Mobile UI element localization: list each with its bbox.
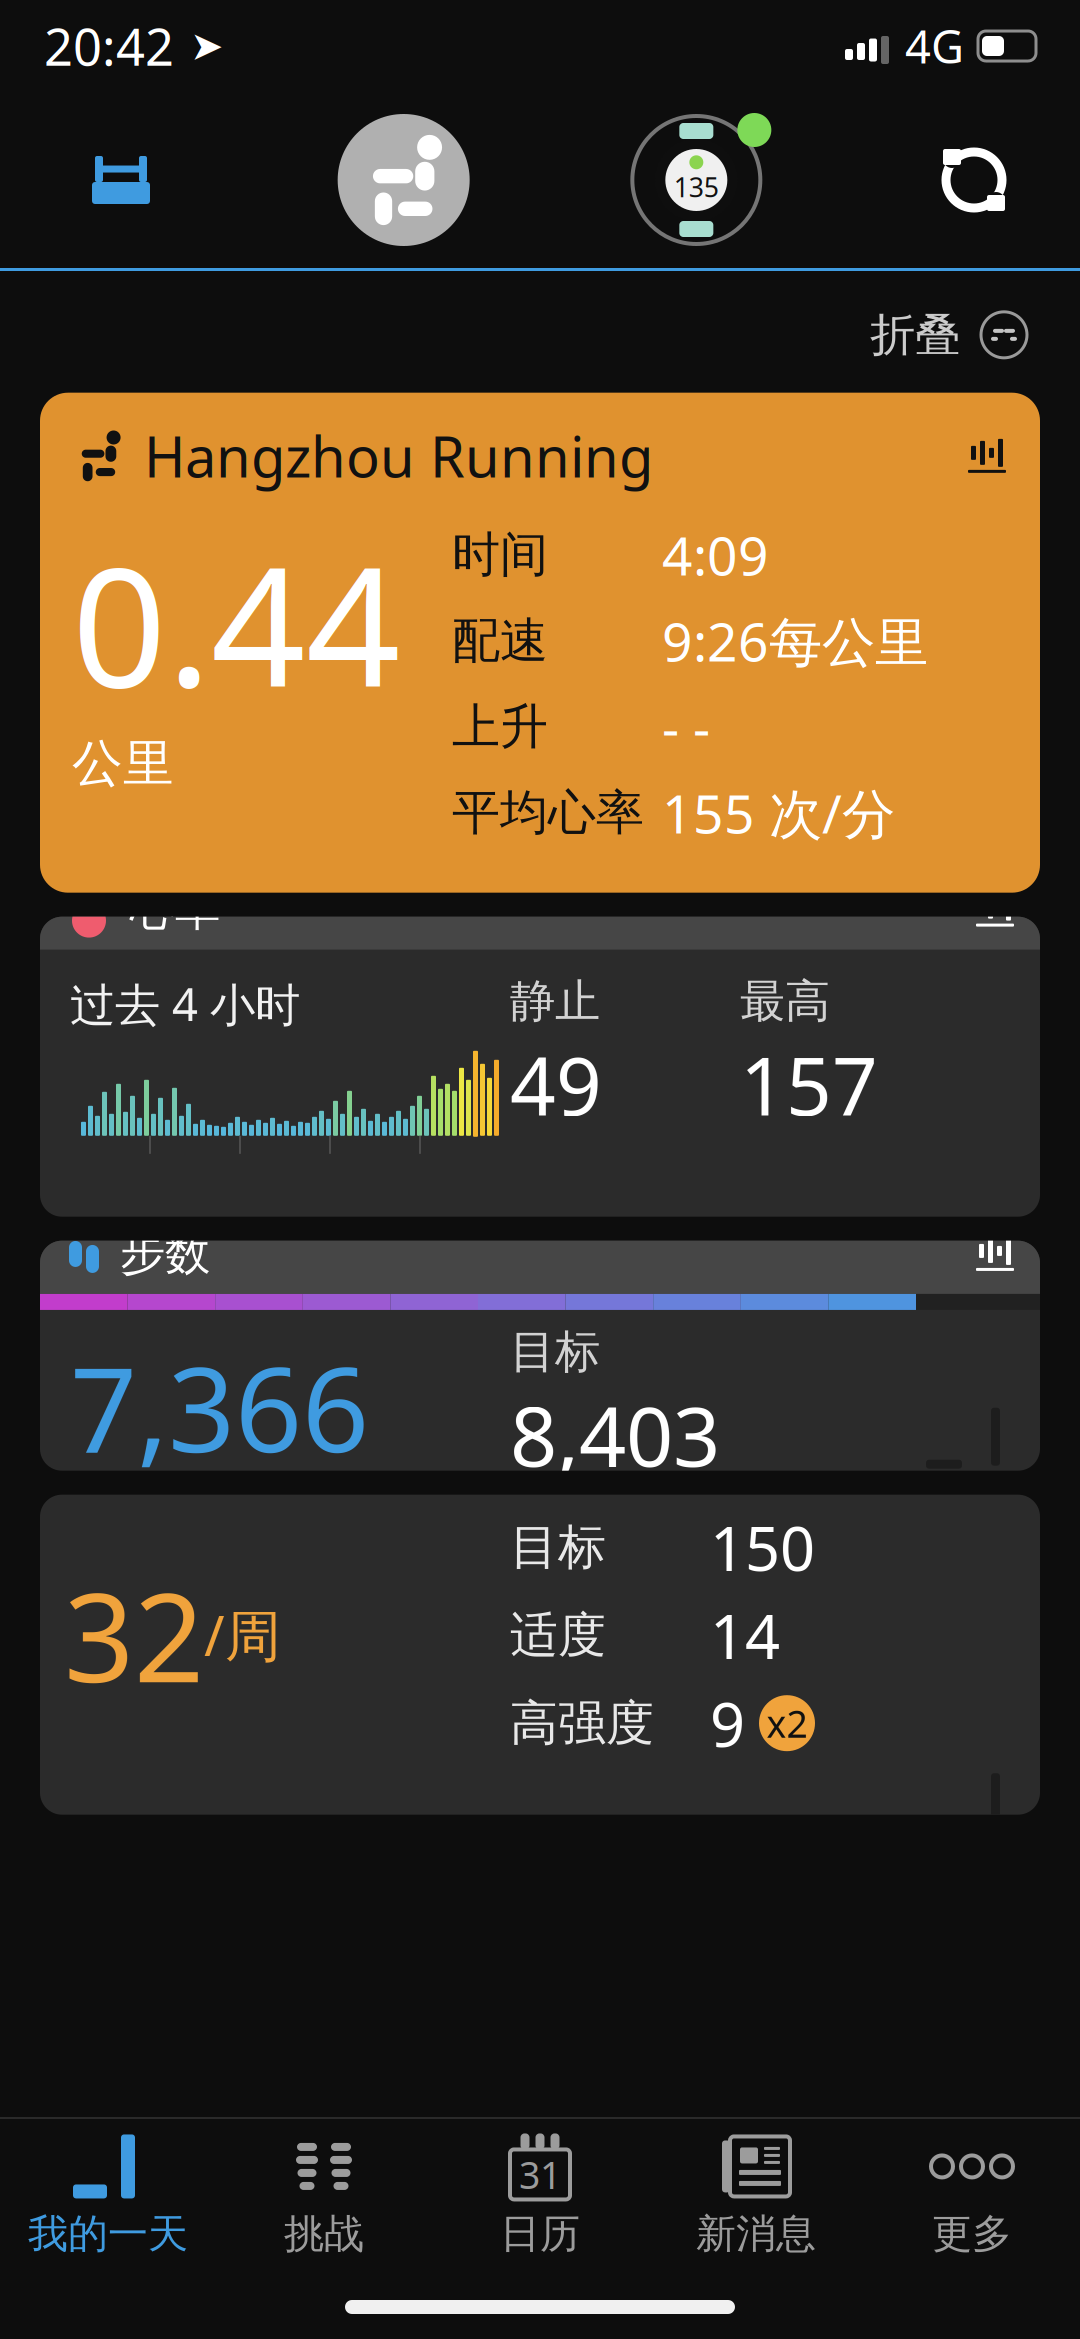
button[interactable]: 更多 — [864, 2119, 1080, 2275]
staticText: 4G — [905, 16, 964, 76]
staticText: 4:09 — [662, 519, 769, 590]
staticText: 适度 — [510, 1606, 606, 1665]
button[interactable]: 心率 — [40, 917, 1040, 1217]
staticText: 日历 — [500, 2209, 580, 2258]
staticText: 157 — [740, 1031, 878, 1137]
staticText: 32 — [64, 1553, 204, 1716]
staticText: 150 — [710, 1506, 815, 1588]
staticText: 高强度 — [510, 1694, 654, 1753]
staticText: 心率 — [130, 882, 220, 937]
button[interactable]: 折叠 — [854, 291, 1044, 379]
staticText: 上升 — [452, 697, 548, 756]
button[interactable]: 设备 — [621, 110, 771, 250]
staticText: 配速 — [452, 611, 548, 670]
staticText: 0.44 — [72, 513, 401, 733]
staticText: - - — [662, 691, 710, 762]
staticText: 公里 — [72, 733, 174, 795]
staticText: 20:42 — [44, 12, 174, 80]
staticText: 更多 — [932, 2209, 1012, 2258]
staticText: 过去 4 小时 — [70, 974, 300, 1034]
staticText: 静止 — [510, 974, 600, 1029]
button[interactable]: 31 — [432, 2119, 648, 2275]
button[interactable]: 同步 — [914, 110, 1034, 250]
staticText: 155 次/分 — [662, 777, 895, 848]
staticText: 挑战 — [284, 2209, 364, 2258]
staticText: /周 — [204, 1597, 281, 1672]
button[interactable]: 新消息 — [648, 2119, 864, 2275]
staticText: 49 — [510, 1031, 602, 1137]
staticText: 7,366 — [70, 1329, 369, 1485]
staticText: 135 — [674, 169, 719, 205]
staticText: 时间 — [452, 525, 548, 584]
button[interactable]: Hangzhou Running — [40, 393, 1040, 893]
staticText: Hangzhou Running — [144, 419, 653, 493]
staticText: 8,403 — [510, 1380, 720, 1489]
staticText: 14 — [710, 1594, 780, 1676]
button[interactable]: 我的一天 — [0, 2119, 216, 2275]
staticText: 目标 — [510, 1518, 606, 1577]
button[interactable]: 强度训练分钟数 — [40, 1495, 1040, 1815]
staticText: 9:26每公里 — [662, 605, 928, 676]
staticText: 我的一天 — [28, 2209, 188, 2258]
button[interactable]: 步数 — [40, 1241, 1040, 1471]
staticText: ➤ — [190, 23, 224, 69]
staticText: 最高 — [740, 974, 830, 1029]
staticText: 31 — [519, 2150, 561, 2199]
button[interactable]: 开始活动 — [329, 105, 479, 255]
staticText: x2 — [766, 1698, 807, 1748]
staticText: 9 — [710, 1682, 745, 1764]
button[interactable]: 挑战 — [216, 2119, 432, 2275]
staticText: 折叠 — [870, 307, 960, 363]
staticText: 目标 — [510, 1324, 600, 1380]
staticText: 平均心率 — [452, 783, 644, 842]
staticText: 新消息 — [696, 2209, 816, 2258]
staticText: 步数 — [120, 1226, 210, 1282]
button[interactable]: 收件箱 — [56, 110, 186, 250]
staticText: 强度训练分钟数 — [132, 1407, 447, 1463]
